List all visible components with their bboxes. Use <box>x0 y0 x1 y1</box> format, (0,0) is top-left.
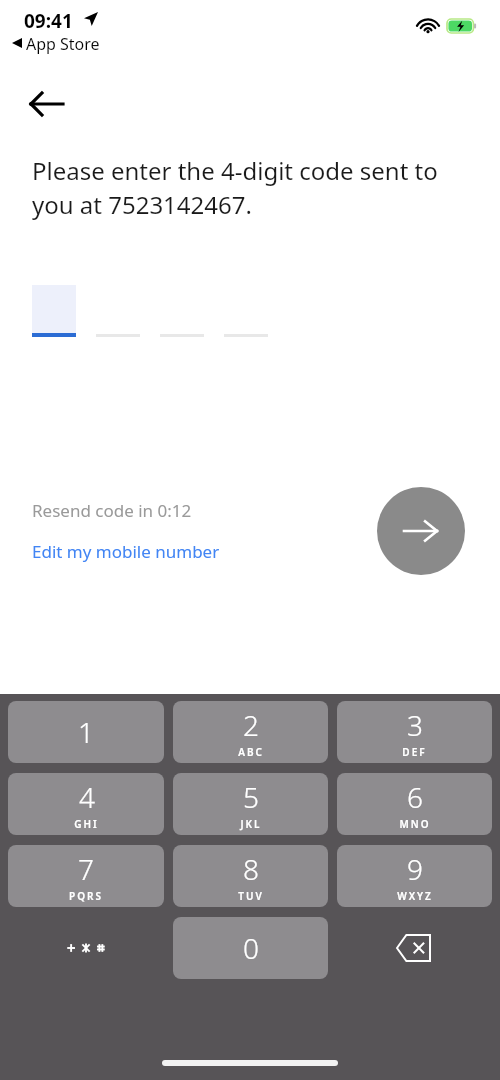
staticText: 1 <box>78 713 94 751</box>
staticText: 09:41 <box>24 8 73 34</box>
staticText: Please enter the 4-digit code sent to yo… <box>32 154 460 221</box>
staticText: 7 <box>78 850 94 888</box>
staticText: 5 <box>243 778 259 816</box>
button[interactable]: 7 <box>8 845 164 907</box>
staticText: Resend code in 0:12 <box>32 499 192 522</box>
staticText: 9 <box>407 850 423 888</box>
staticText: PQRS <box>69 889 103 903</box>
staticText: App Store <box>26 33 100 55</box>
staticText: Edit my mobile number <box>32 540 220 563</box>
button[interactable]: 8 <box>173 845 328 907</box>
button[interactable] <box>32 285 76 337</box>
staticText: GHI <box>74 817 99 831</box>
staticText: MNO <box>399 817 431 831</box>
staticText: WXYZ <box>397 889 433 903</box>
staticText: 2 <box>243 706 259 744</box>
button[interactable]: 2 <box>173 701 328 763</box>
staticText: 0 <box>243 929 259 967</box>
button[interactable]: 1 <box>8 701 164 763</box>
staticText: TUV <box>238 889 264 903</box>
staticText: ABC <box>238 745 264 759</box>
button[interactable]: Continue <box>377 487 465 575</box>
staticText: 8 <box>243 850 259 888</box>
button[interactable]: 4 <box>8 773 164 835</box>
button[interactable] <box>224 285 268 337</box>
button[interactable]: 0 <box>173 917 328 979</box>
staticText: DEF <box>402 745 427 759</box>
button[interactable]: Symbols <box>8 917 164 979</box>
button[interactable]: 9 <box>337 845 492 907</box>
button[interactable]: Edit my mobile number <box>32 540 220 563</box>
staticText: 3 <box>407 706 423 744</box>
button[interactable]: Back <box>18 76 74 132</box>
button[interactable] <box>96 285 140 337</box>
button[interactable]: Backspace <box>337 917 492 979</box>
button[interactable]: 6 <box>337 773 492 835</box>
staticText: 4 <box>79 778 95 816</box>
staticText: 6 <box>407 778 423 816</box>
staticText: JKL <box>240 817 262 831</box>
button[interactable] <box>160 285 204 337</box>
button[interactable]: 3 <box>337 701 492 763</box>
button[interactable]: 5 <box>173 773 328 835</box>
